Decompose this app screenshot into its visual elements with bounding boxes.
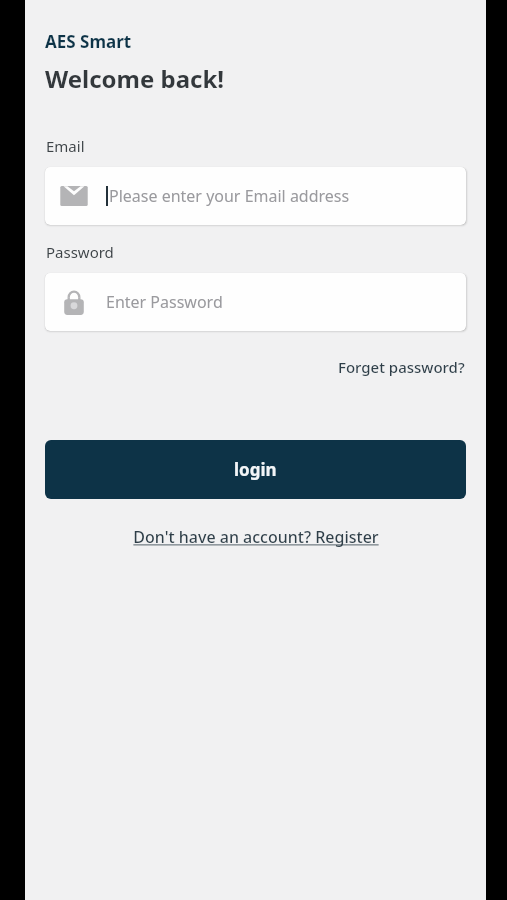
button[interactable]: login bbox=[45, 440, 466, 499]
staticText: Forget password? bbox=[338, 357, 465, 377]
staticText: Please enter your Email address bbox=[109, 185, 350, 207]
button[interactable]: Don't have an account? Register bbox=[127, 520, 385, 554]
other: Email bbox=[60, 182, 88, 210]
staticText: Don't have an account? Register bbox=[133, 526, 379, 548]
staticText: login bbox=[234, 458, 277, 481]
button[interactable]: Password bbox=[45, 273, 466, 331]
button[interactable]: Forget password? bbox=[338, 353, 486, 381]
staticText: Email bbox=[46, 136, 85, 156]
staticText: Welcome back! bbox=[45, 62, 225, 95]
staticText: AES Smart bbox=[45, 30, 132, 53]
staticText: Enter Password bbox=[106, 291, 223, 313]
other: Password bbox=[60, 288, 88, 316]
button[interactable]: Email bbox=[45, 167, 466, 225]
staticText: Password bbox=[46, 242, 114, 262]
